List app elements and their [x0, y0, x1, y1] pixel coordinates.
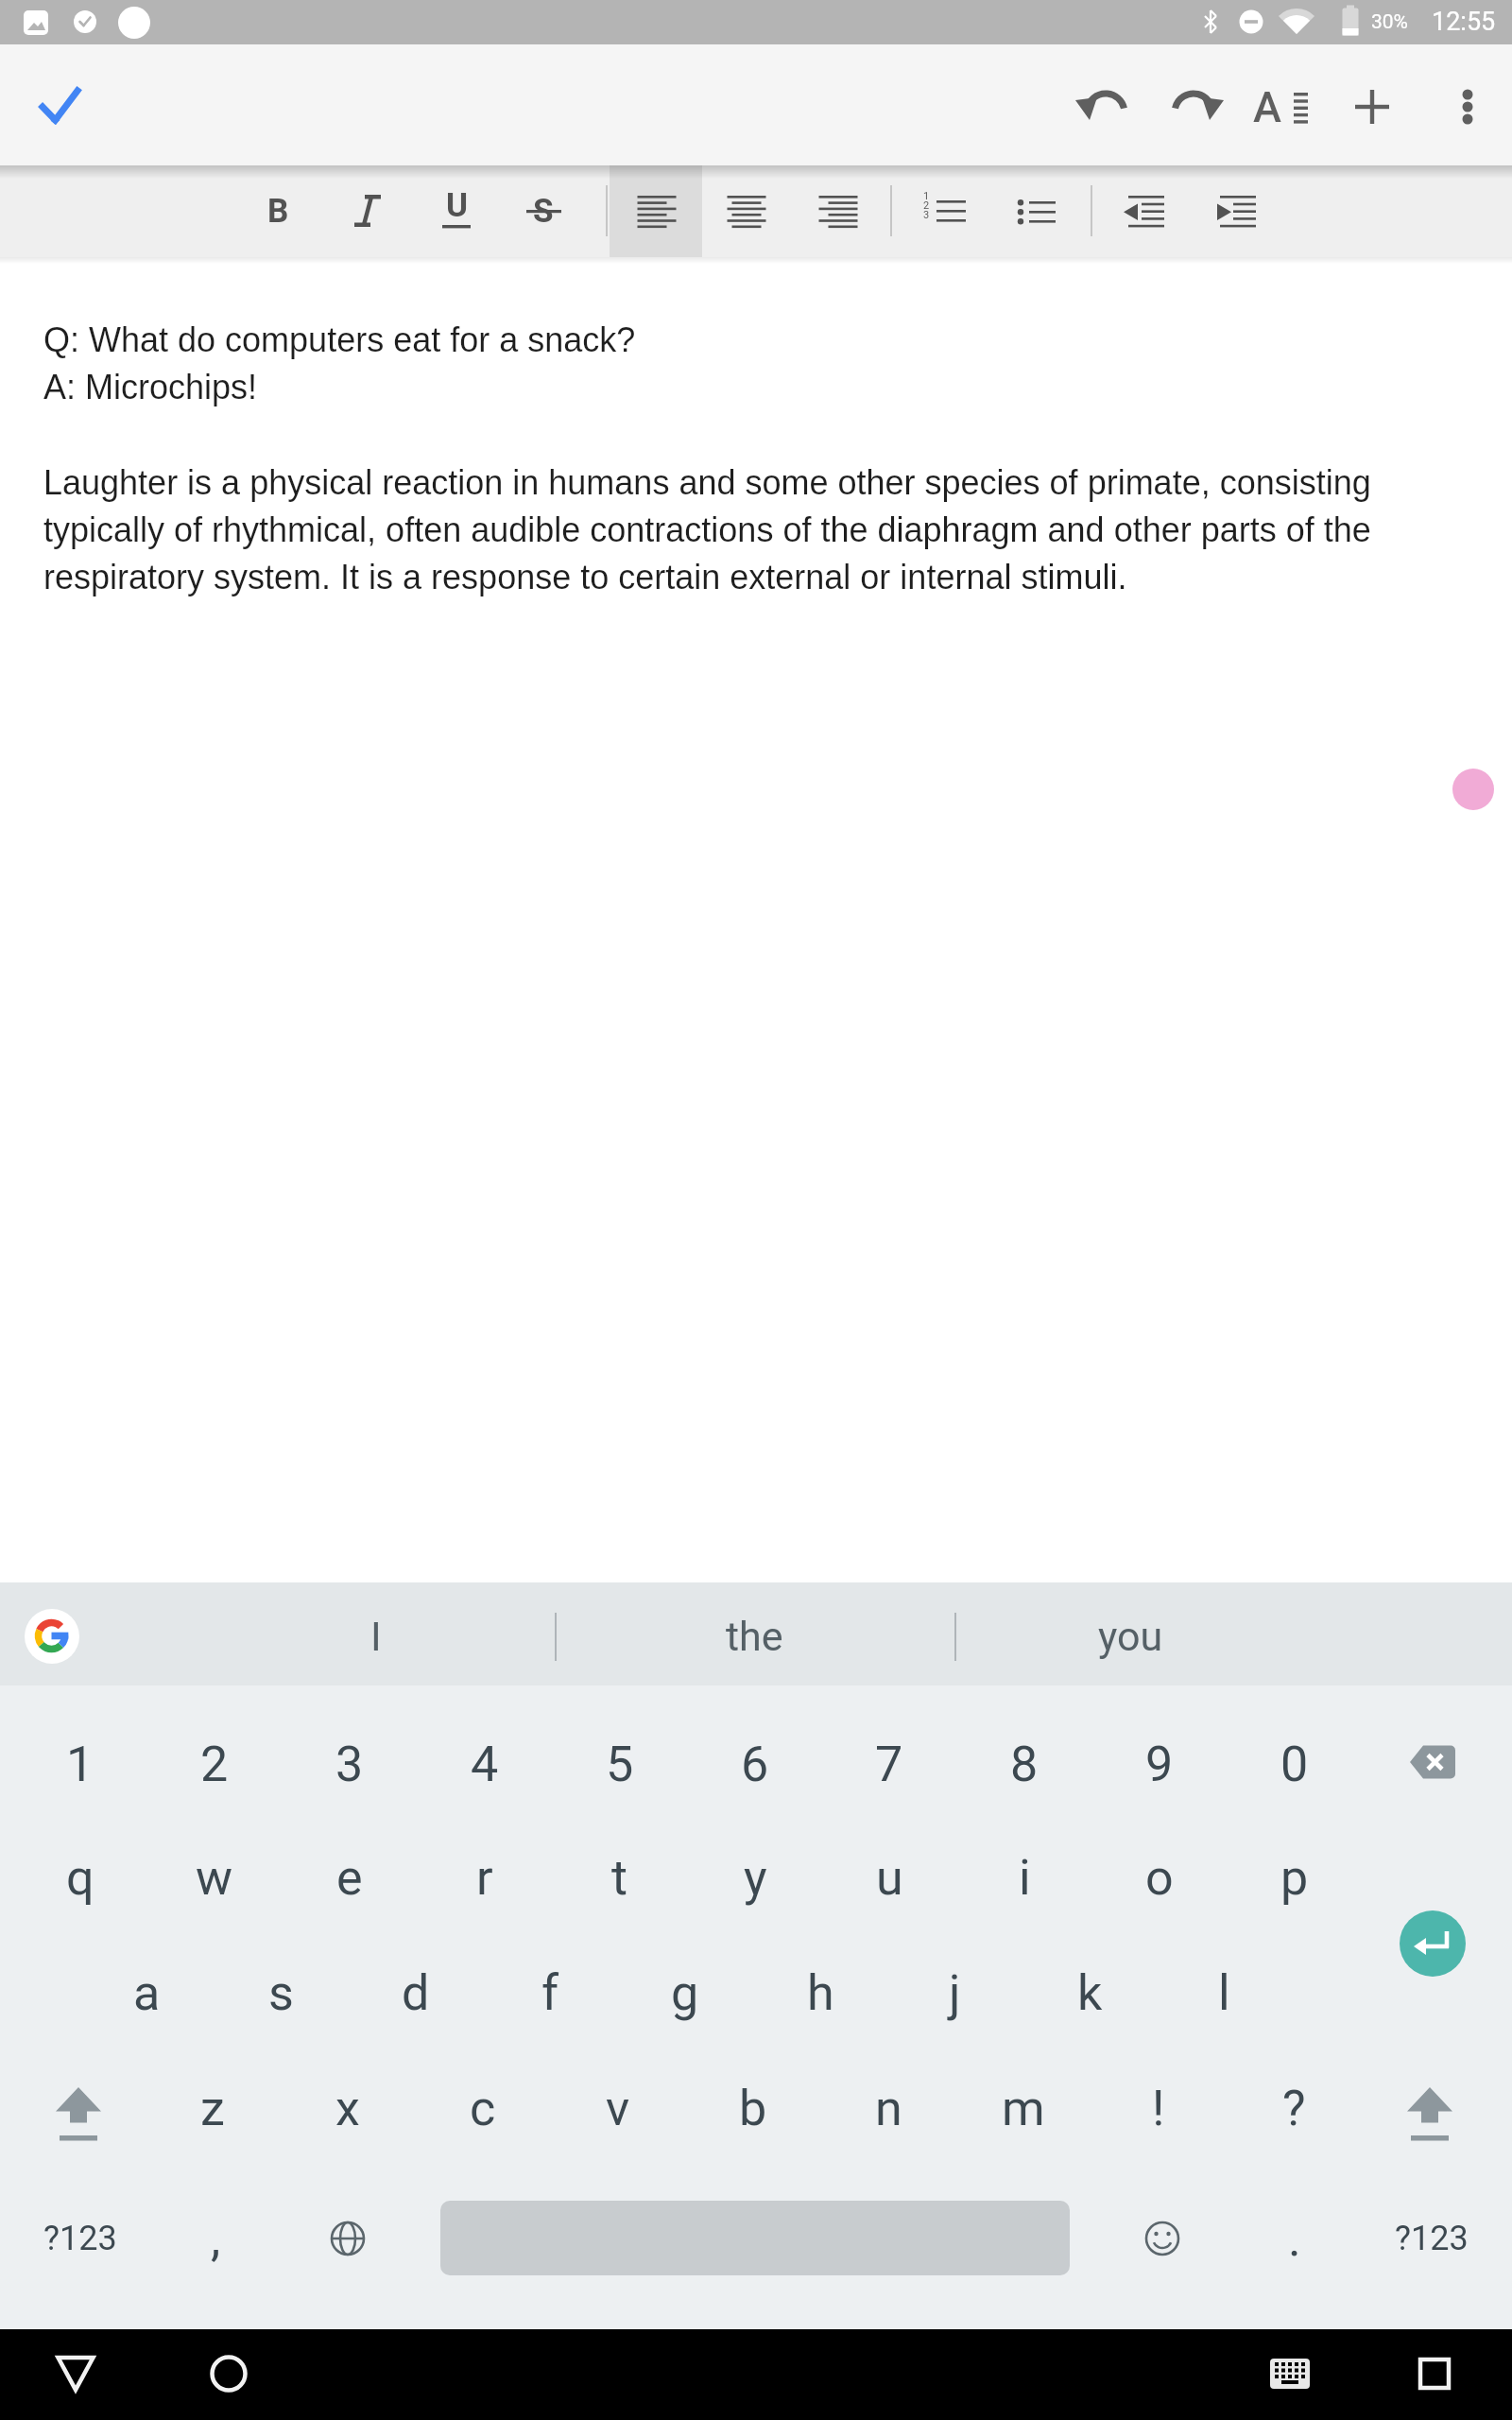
staticText: 1 — [66, 1736, 94, 1793]
button[interactable] — [1101, 165, 1192, 256]
button[interactable]: m — [961, 2055, 1086, 2161]
staticText: B — [267, 192, 289, 231]
button[interactable]: s — [218, 1940, 343, 2046]
staticText: r — [476, 1849, 493, 1907]
button[interactable]: 1 — [18, 1711, 143, 1817]
button[interactable]: ?123 — [18, 2186, 143, 2291]
button[interactable] — [285, 2186, 410, 2291]
button[interactable] — [1370, 1709, 1495, 1815]
staticText: 1 2 3 — [923, 190, 930, 221]
button[interactable]: w — [152, 1824, 277, 1930]
staticText: o — [1145, 1849, 1174, 1907]
button[interactable] — [16, 2055, 141, 2161]
button[interactable] — [1364, 2328, 1505, 2419]
staticText: 7 — [875, 1736, 903, 1793]
button[interactable] — [1367, 2055, 1492, 2161]
staticText: a — [133, 1964, 161, 2022]
button[interactable] — [1150, 60, 1241, 151]
button[interactable]: h — [758, 1940, 883, 2046]
button[interactable]: ! — [1096, 2055, 1221, 2161]
button[interactable] — [1219, 2328, 1361, 2419]
button[interactable]: k — [1027, 1940, 1152, 2046]
button[interactable]: o — [1097, 1824, 1222, 1930]
button[interactable] — [322, 165, 413, 256]
button[interactable]: u — [827, 1824, 952, 1930]
button[interactable]: e — [287, 1824, 412, 1930]
button[interactable]: S — [498, 165, 589, 256]
button[interactable]: 4 — [422, 1711, 547, 1817]
staticText: y — [744, 1849, 767, 1907]
staticText: i — [1019, 1849, 1031, 1907]
button[interactable]: ? — [1231, 2055, 1356, 2161]
button[interactable]: 0 — [1232, 1711, 1357, 1817]
button[interactable]: U — [412, 164, 503, 255]
button[interactable] — [1400, 1910, 1466, 1977]
staticText: u — [876, 1849, 903, 1907]
staticText: S — [533, 192, 554, 231]
staticText: A: Microchips! — [43, 368, 258, 406]
button[interactable] — [991, 165, 1082, 256]
button[interactable]: A — [1240, 60, 1331, 151]
button[interactable]: t — [558, 1824, 682, 1930]
staticText: 6 — [741, 1736, 769, 1793]
button[interactable]: B — [232, 165, 323, 256]
button[interactable]: the — [560, 1585, 948, 1687]
staticText: x — [335, 2080, 360, 2137]
button[interactable]: p — [1232, 1824, 1357, 1930]
button[interactable]: I — [201, 1585, 551, 1687]
button[interactable] — [1100, 2186, 1225, 2291]
staticText: 8 — [1010, 1736, 1039, 1793]
button[interactable] — [1327, 61, 1417, 152]
button[interactable]: j — [892, 1940, 1017, 2046]
staticText: v — [606, 2080, 630, 2137]
button[interactable]: y — [693, 1824, 817, 1930]
button[interactable] — [1422, 61, 1512, 152]
button[interactable]: 8 — [962, 1711, 1087, 1817]
button[interactable]: ?123 — [1369, 2186, 1494, 2291]
button[interactable]: . — [1232, 2186, 1357, 2291]
button[interactable]: 9 — [1097, 1711, 1222, 1817]
staticText: h — [807, 1964, 834, 2022]
button[interactable]: b — [691, 2055, 816, 2161]
staticText: typically of rhythmical, often audible c… — [43, 510, 1371, 548]
staticText: 4 — [471, 1736, 499, 1793]
button[interactable]: f — [488, 1940, 612, 2046]
staticText: Laughter is a physical reaction in human… — [43, 463, 1371, 501]
button[interactable] — [793, 165, 884, 256]
button[interactable]: , — [153, 2186, 278, 2291]
staticText: , — [211, 2210, 221, 2268]
button[interactable]: z — [150, 2055, 275, 2161]
button[interactable] — [611, 165, 702, 256]
button[interactable] — [158, 2328, 300, 2419]
button[interactable]: 6 — [693, 1711, 817, 1817]
staticText: s — [268, 1964, 294, 2022]
button[interactable] — [1193, 165, 1283, 256]
button[interactable]: v — [556, 2055, 680, 2161]
button[interactable]: 7 — [827, 1711, 952, 1817]
button[interactable] — [14, 60, 105, 151]
button[interactable]: 5 — [558, 1711, 682, 1817]
button[interactable]: i — [962, 1824, 1087, 1930]
button[interactable] — [5, 2328, 146, 2419]
button[interactable]: 1 2 3 — [900, 165, 990, 256]
button[interactable]: you — [936, 1585, 1324, 1687]
staticText: 30% — [1371, 10, 1408, 34]
button[interactable]: 2 — [152, 1711, 277, 1817]
button[interactable]: c — [421, 2055, 545, 2161]
button[interactable]: q — [18, 1824, 143, 1930]
button[interactable] — [1058, 60, 1149, 151]
button[interactable]: n — [826, 2055, 951, 2161]
staticText: f — [541, 1964, 559, 2022]
button[interactable]: r — [422, 1824, 547, 1930]
button[interactable] — [701, 165, 792, 256]
button[interactable]: x — [285, 2055, 410, 2161]
button[interactable]: a — [84, 1940, 209, 2046]
staticText: t — [611, 1849, 628, 1907]
button[interactable] — [25, 1609, 79, 1664]
button[interactable]: 3 — [287, 1711, 412, 1817]
button[interactable]: l — [1161, 1940, 1286, 2046]
button[interactable]: d — [353, 1940, 478, 2046]
button[interactable]: g — [623, 1940, 747, 2046]
staticText: ? — [1282, 2080, 1306, 2137]
